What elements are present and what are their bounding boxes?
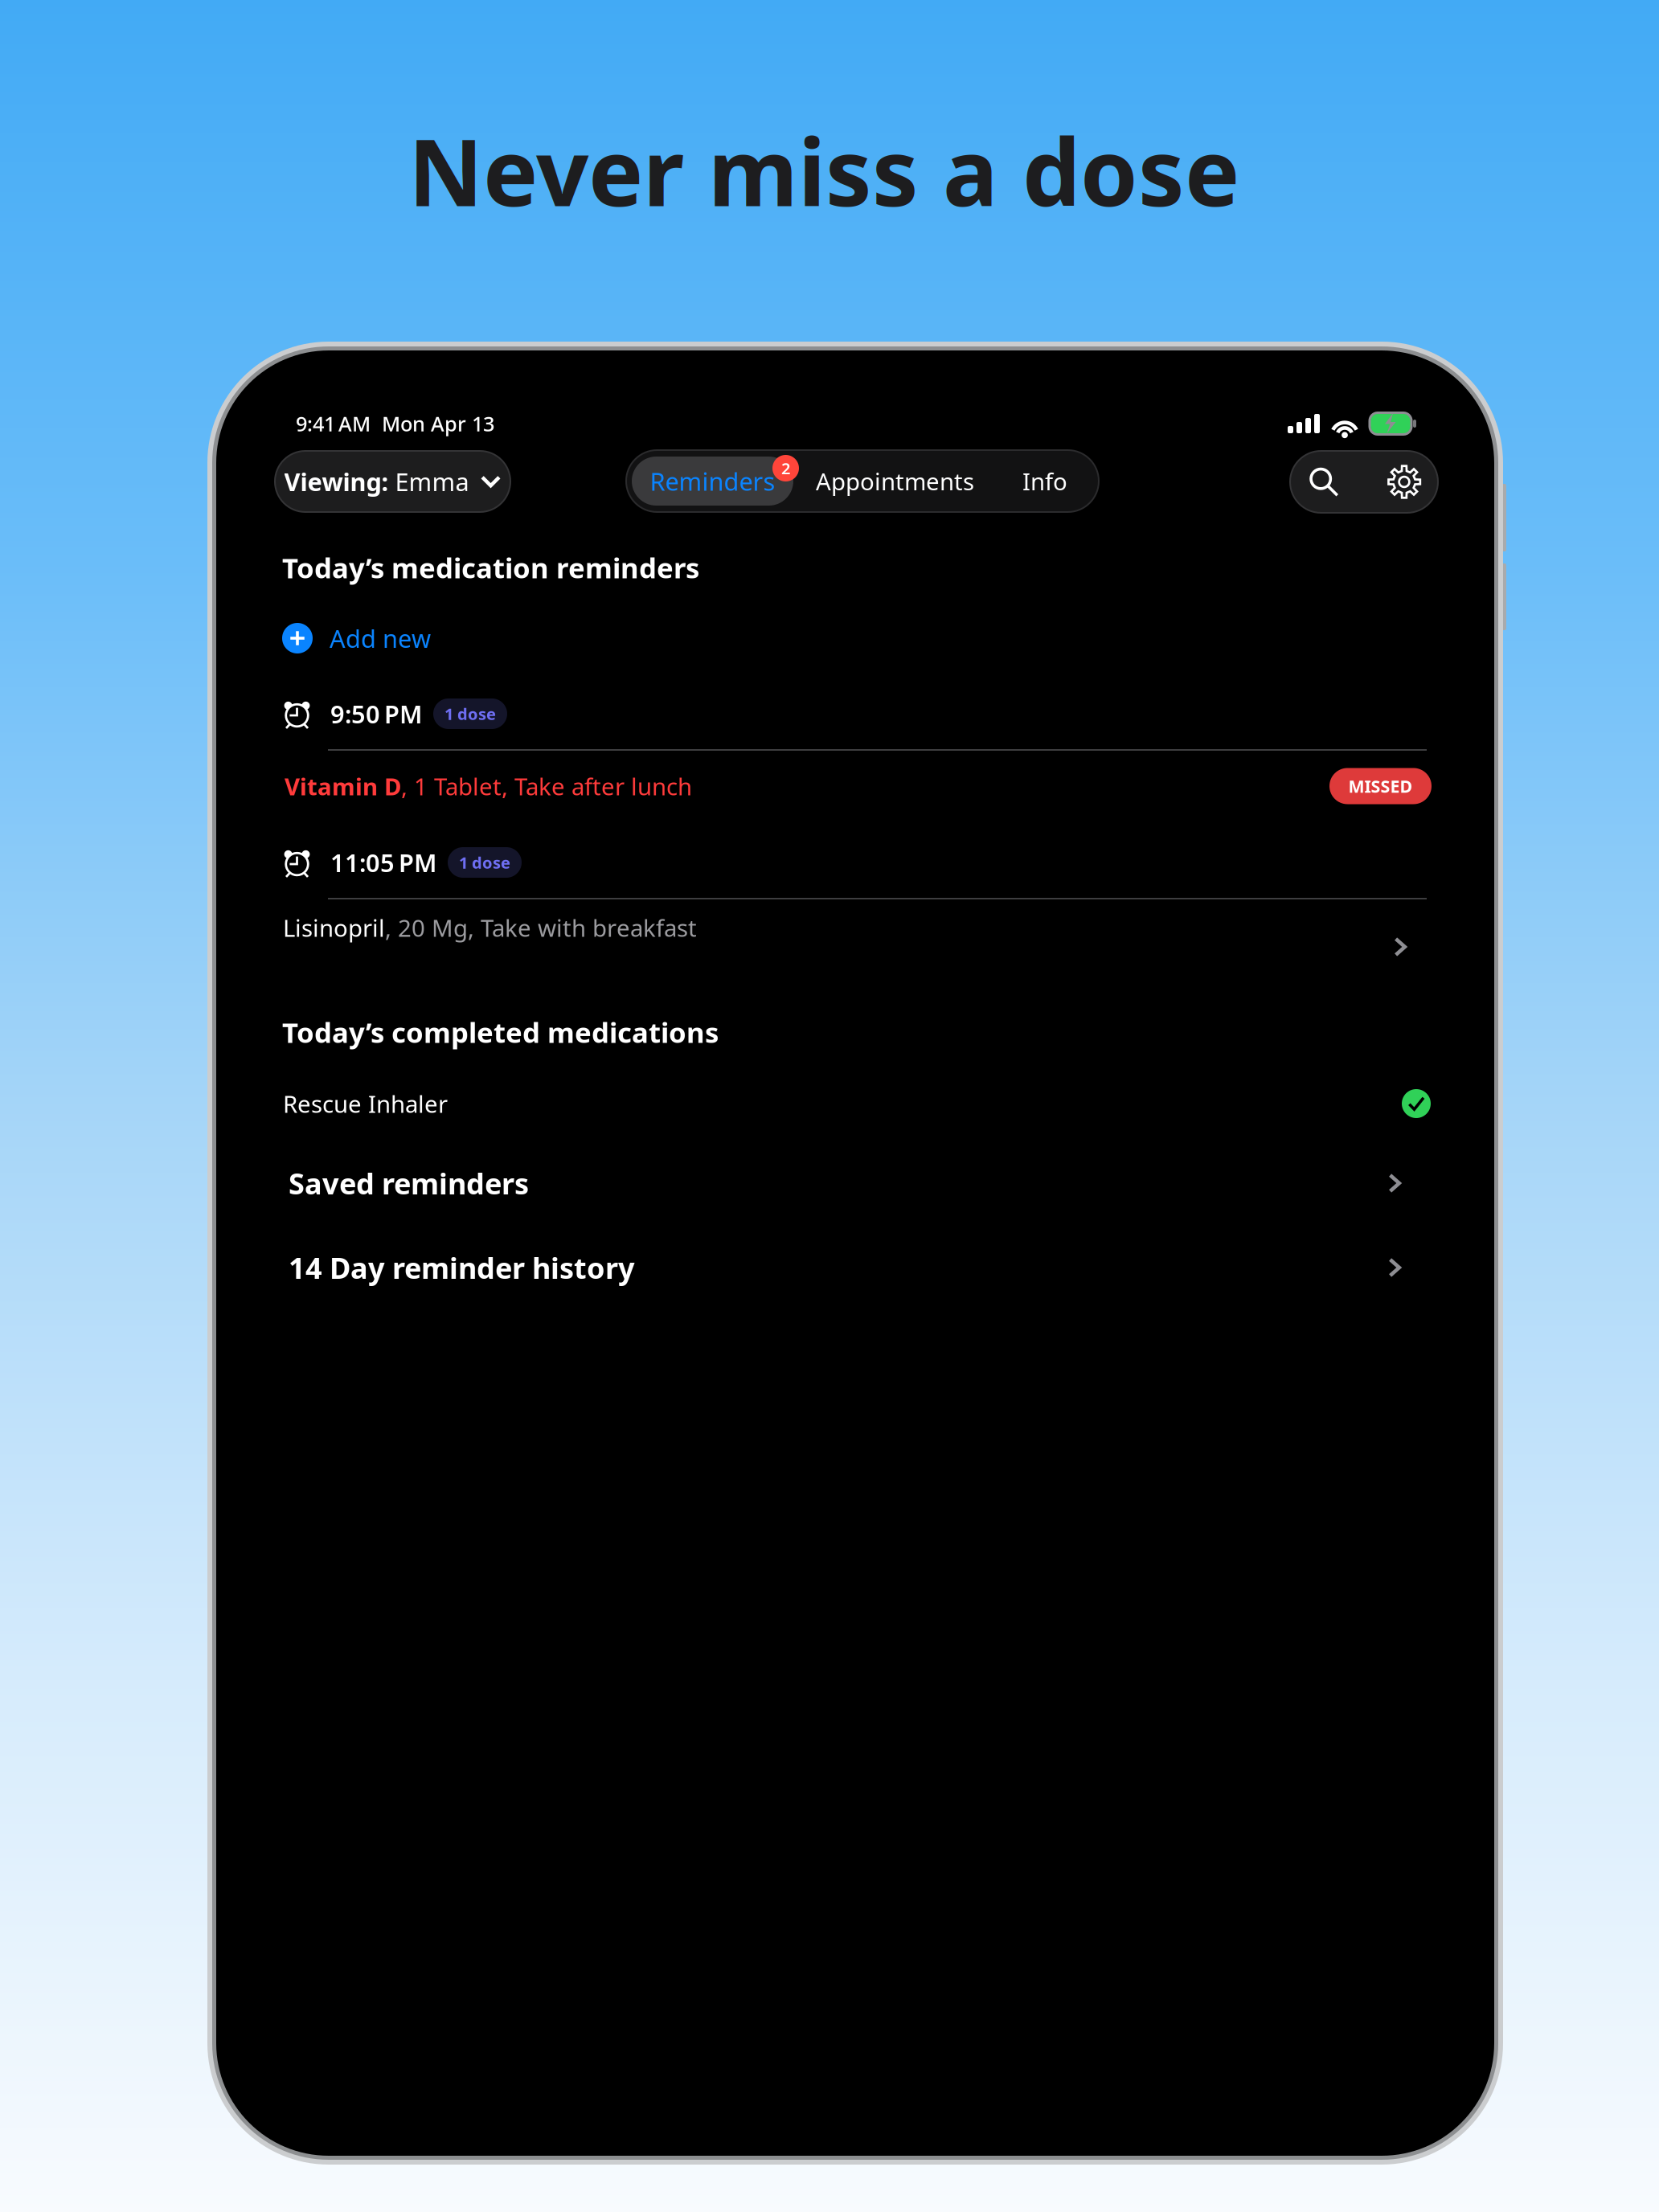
button[interactable]: 14 Day reminder history: [289, 1244, 1407, 1291]
button[interactable]: Info: [997, 457, 1093, 506]
button[interactable]: Appointments: [793, 457, 997, 506]
staticText: Viewing:: [284, 465, 389, 498]
staticText: Today’s medication reminders: [282, 549, 699, 586]
staticText: 9:41 AM Mon Apr 13: [296, 410, 494, 437]
staticText: Never miss a dose: [408, 109, 1239, 232]
staticText: Lisinopril: [283, 912, 385, 943]
staticText: 9:50 PM: [330, 697, 422, 730]
button[interactable]: Reminders: [632, 457, 793, 506]
staticText: Today’s completed medications: [282, 1014, 719, 1051]
staticText: 2: [781, 458, 790, 479]
staticText: 14 Day reminder history: [289, 1248, 635, 1287]
staticText: , 20 Mg, Take with breakfast: [385, 912, 697, 943]
staticText: Rescue Inhaler: [283, 1088, 448, 1119]
staticText: , 1 Tablet, Take after lunch: [401, 770, 692, 802]
staticText: Reminders: [650, 465, 775, 497]
button[interactable]: Lisinopril: [283, 907, 1416, 948]
button[interactable]: Saved reminders: [289, 1160, 1407, 1206]
button[interactable]: Search: [1293, 451, 1354, 513]
staticText: Emma: [389, 465, 469, 498]
staticText: 11:05 PM: [330, 846, 436, 879]
button[interactable]: Add new: [282, 621, 431, 656]
staticText: MISSED: [1348, 775, 1413, 797]
staticText: Add new: [330, 622, 431, 655]
staticText: Appointments: [816, 465, 974, 497]
staticText: Vitamin D: [285, 770, 401, 802]
button[interactable]: Viewing:: [275, 451, 510, 512]
button[interactable]: Settings: [1374, 451, 1435, 513]
button[interactable]: Rescue Inhaler: [283, 1088, 1431, 1120]
staticText: 1 dose: [459, 852, 510, 873]
staticText: 1 dose: [444, 703, 496, 724]
button[interactable]: Vitamin D: [285, 765, 1432, 807]
staticText: Info: [1022, 465, 1067, 497]
staticText: Saved reminders: [289, 1164, 529, 1202]
